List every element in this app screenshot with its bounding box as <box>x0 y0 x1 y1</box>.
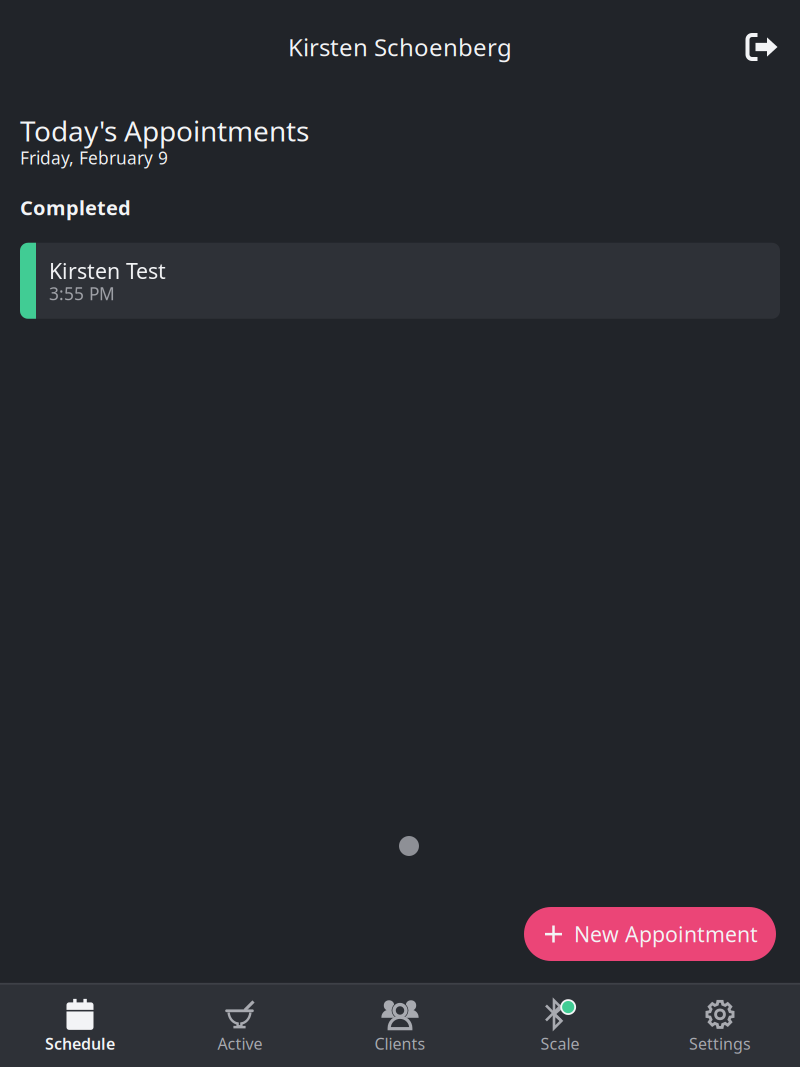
staticText: Kirsten Test <box>49 257 166 285</box>
staticText: Kirsten Schoenberg <box>288 31 512 63</box>
staticText: Friday, February 9 <box>20 146 168 169</box>
button[interactable]: Scale <box>480 985 640 1067</box>
button[interactable]: Log out <box>727 22 800 72</box>
staticText: Completed <box>20 194 131 221</box>
button[interactable]: Schedule <box>0 985 160 1067</box>
staticText: Clients <box>374 1033 425 1054</box>
button[interactable]: Clients <box>320 985 480 1067</box>
staticText: Scale <box>540 1033 579 1054</box>
button[interactable]: Active <box>160 985 320 1067</box>
staticText: Active <box>217 1033 262 1054</box>
button[interactable]: Kirsten Test <box>20 243 780 319</box>
button[interactable]: Settings <box>640 985 800 1067</box>
button[interactable]: New Appointment <box>524 907 776 961</box>
staticText: Settings <box>689 1033 751 1054</box>
staticText: Schedule <box>45 1033 115 1054</box>
staticText: Today's Appointments <box>20 112 309 149</box>
staticText: New Appointment <box>574 920 758 948</box>
staticText: 3:55 PM <box>49 282 115 305</box>
